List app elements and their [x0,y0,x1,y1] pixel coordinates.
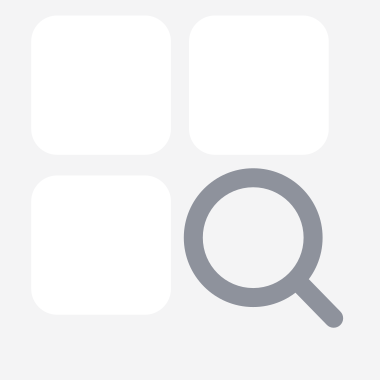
button[interactable]: Search [184,168,343,328]
